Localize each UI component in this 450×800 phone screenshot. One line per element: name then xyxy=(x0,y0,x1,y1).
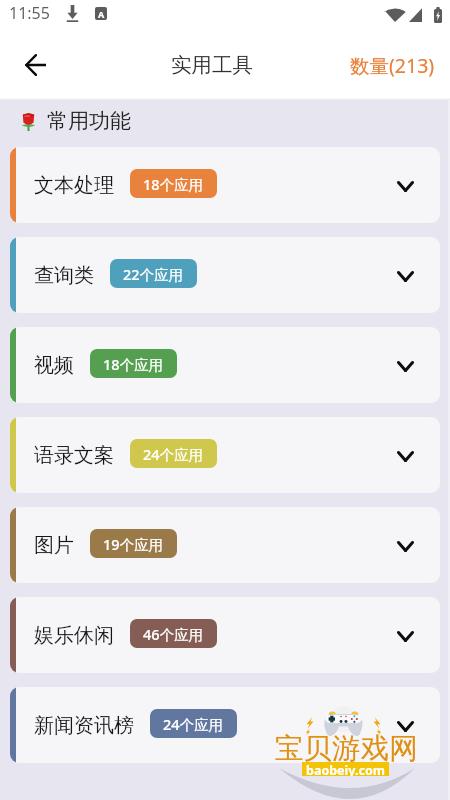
staticText: 宝贝游戏网 xyxy=(275,731,418,767)
button[interactable]: 娱乐休闲 xyxy=(10,597,440,673)
button[interactable]: 数量(213) xyxy=(335,46,450,85)
staticText: 视频 xyxy=(34,353,74,378)
button[interactable]: 视频 xyxy=(10,327,440,403)
staticText: 22个应用 xyxy=(123,264,184,284)
staticText: 实用工具 xyxy=(171,52,253,78)
staticText: 文本处理 xyxy=(34,173,114,198)
button[interactable]: Expand xyxy=(393,624,417,648)
button[interactable]: Expand xyxy=(393,174,417,198)
button[interactable]: Expand xyxy=(393,714,417,738)
button[interactable]: Expand xyxy=(393,444,417,468)
staticText: 18个应用 xyxy=(103,354,164,374)
button[interactable]: Back xyxy=(13,43,57,87)
staticText: 18个应用 xyxy=(143,174,204,194)
button[interactable]: 图片 xyxy=(10,507,440,583)
staticText: 常用功能 xyxy=(47,108,131,134)
staticText: 娱乐休闲 xyxy=(34,623,114,648)
button[interactable]: 新闻资讯榜 xyxy=(10,687,440,763)
staticText: 语录文案 xyxy=(34,443,114,468)
staticText: A xyxy=(98,8,105,20)
staticText: 数量(213) xyxy=(350,52,435,79)
staticText: baobeiy.com xyxy=(306,762,385,776)
button[interactable]: Expand xyxy=(393,534,417,558)
staticText: 查询类 xyxy=(34,263,94,288)
button[interactable]: 查询类 xyxy=(10,237,440,313)
staticText: 11:55 xyxy=(9,2,50,24)
staticText: 新闻资讯榜 xyxy=(34,713,134,738)
button[interactable]: Expand xyxy=(393,264,417,288)
button[interactable]: 语录文案 xyxy=(10,417,440,493)
button[interactable]: Expand xyxy=(393,354,417,378)
staticText: 24个应用 xyxy=(163,714,224,734)
button[interactable]: 文本处理 xyxy=(10,147,440,223)
staticText: 24个应用 xyxy=(143,444,204,464)
staticText: 19个应用 xyxy=(103,534,164,554)
staticText: 图片 xyxy=(34,533,74,558)
staticText: 46个应用 xyxy=(143,624,204,644)
